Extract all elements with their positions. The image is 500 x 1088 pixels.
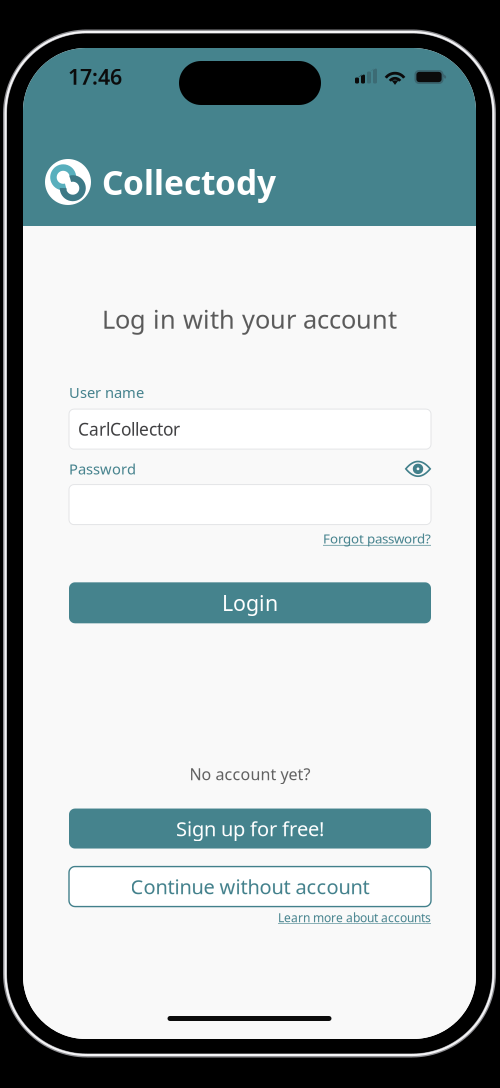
button[interactable]: Login: [69, 582, 431, 623]
staticText: User name: [69, 383, 144, 402]
staticText: CarlCollector: [78, 418, 180, 441]
staticText: Learn more about accounts: [278, 910, 431, 925]
button[interactable]: Continue without account: [69, 867, 431, 907]
staticText: Password: [69, 459, 136, 479]
staticText: Sign up for free!: [176, 815, 324, 842]
staticText: Forgot password?: [323, 530, 431, 547]
button[interactable]: Show password: [405, 461, 431, 477]
staticText: Login: [222, 589, 278, 617]
staticText: Log in with your account: [102, 302, 397, 336]
staticText: Collectody: [102, 160, 276, 204]
button[interactable]: Learn more about accounts: [69, 910, 431, 925]
button[interactable]: Sign up for free!: [69, 809, 431, 849]
staticText: Continue without account: [130, 873, 369, 900]
staticText: No account yet?: [189, 763, 310, 784]
staticText: 17:46: [68, 62, 122, 91]
button[interactable]: Forgot password?: [69, 530, 431, 547]
